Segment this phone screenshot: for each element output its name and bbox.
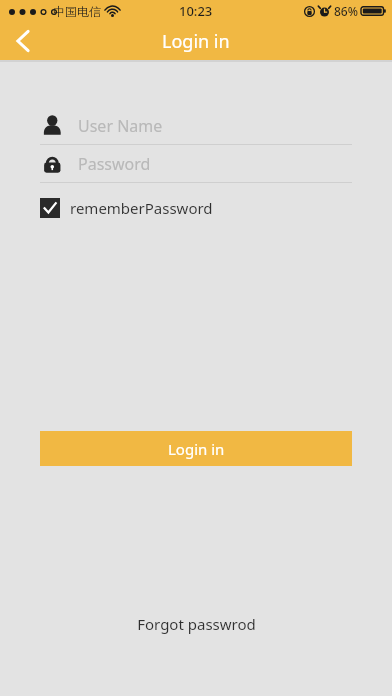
- button[interactable]: Forgot passwrod: [125, 608, 268, 640]
- staticText: 86%: [334, 3, 358, 19]
- button[interactable]: rememberPassword: [40, 193, 213, 223]
- staticText: rememberPassword: [70, 198, 213, 218]
- button[interactable]: User Name: [40, 107, 352, 144]
- button[interactable]: Password: [40, 145, 352, 182]
- staticText: 10:23: [179, 2, 213, 20]
- staticText: Login in: [162, 29, 230, 54]
- button[interactable]: Back: [0, 22, 46, 60]
- staticText: Login in: [168, 439, 225, 459]
- button[interactable]: Login in: [40, 431, 352, 466]
- staticText: User Name: [78, 115, 163, 137]
- staticText: Forgot passwrod: [137, 614, 256, 634]
- staticText: Password: [78, 153, 151, 175]
- staticText: 中国电信: [53, 4, 101, 19]
